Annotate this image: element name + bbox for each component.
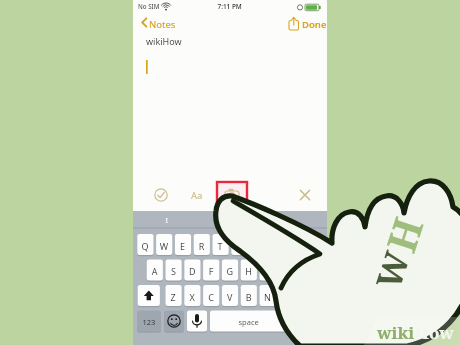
button[interactable]: Camera xyxy=(217,182,247,208)
button[interactable]: Close toolbar xyxy=(293,183,317,207)
button[interactable]: wikiHow step illustration: tap the camer… xyxy=(0,0,460,345)
button[interactable]: Back to Notes xyxy=(133,12,195,34)
button[interactable]: Share xyxy=(285,12,308,34)
button[interactable]: Text formatting xyxy=(185,183,209,207)
button[interactable]: Checklist xyxy=(149,183,173,207)
button[interactable]: Done xyxy=(299,12,327,34)
